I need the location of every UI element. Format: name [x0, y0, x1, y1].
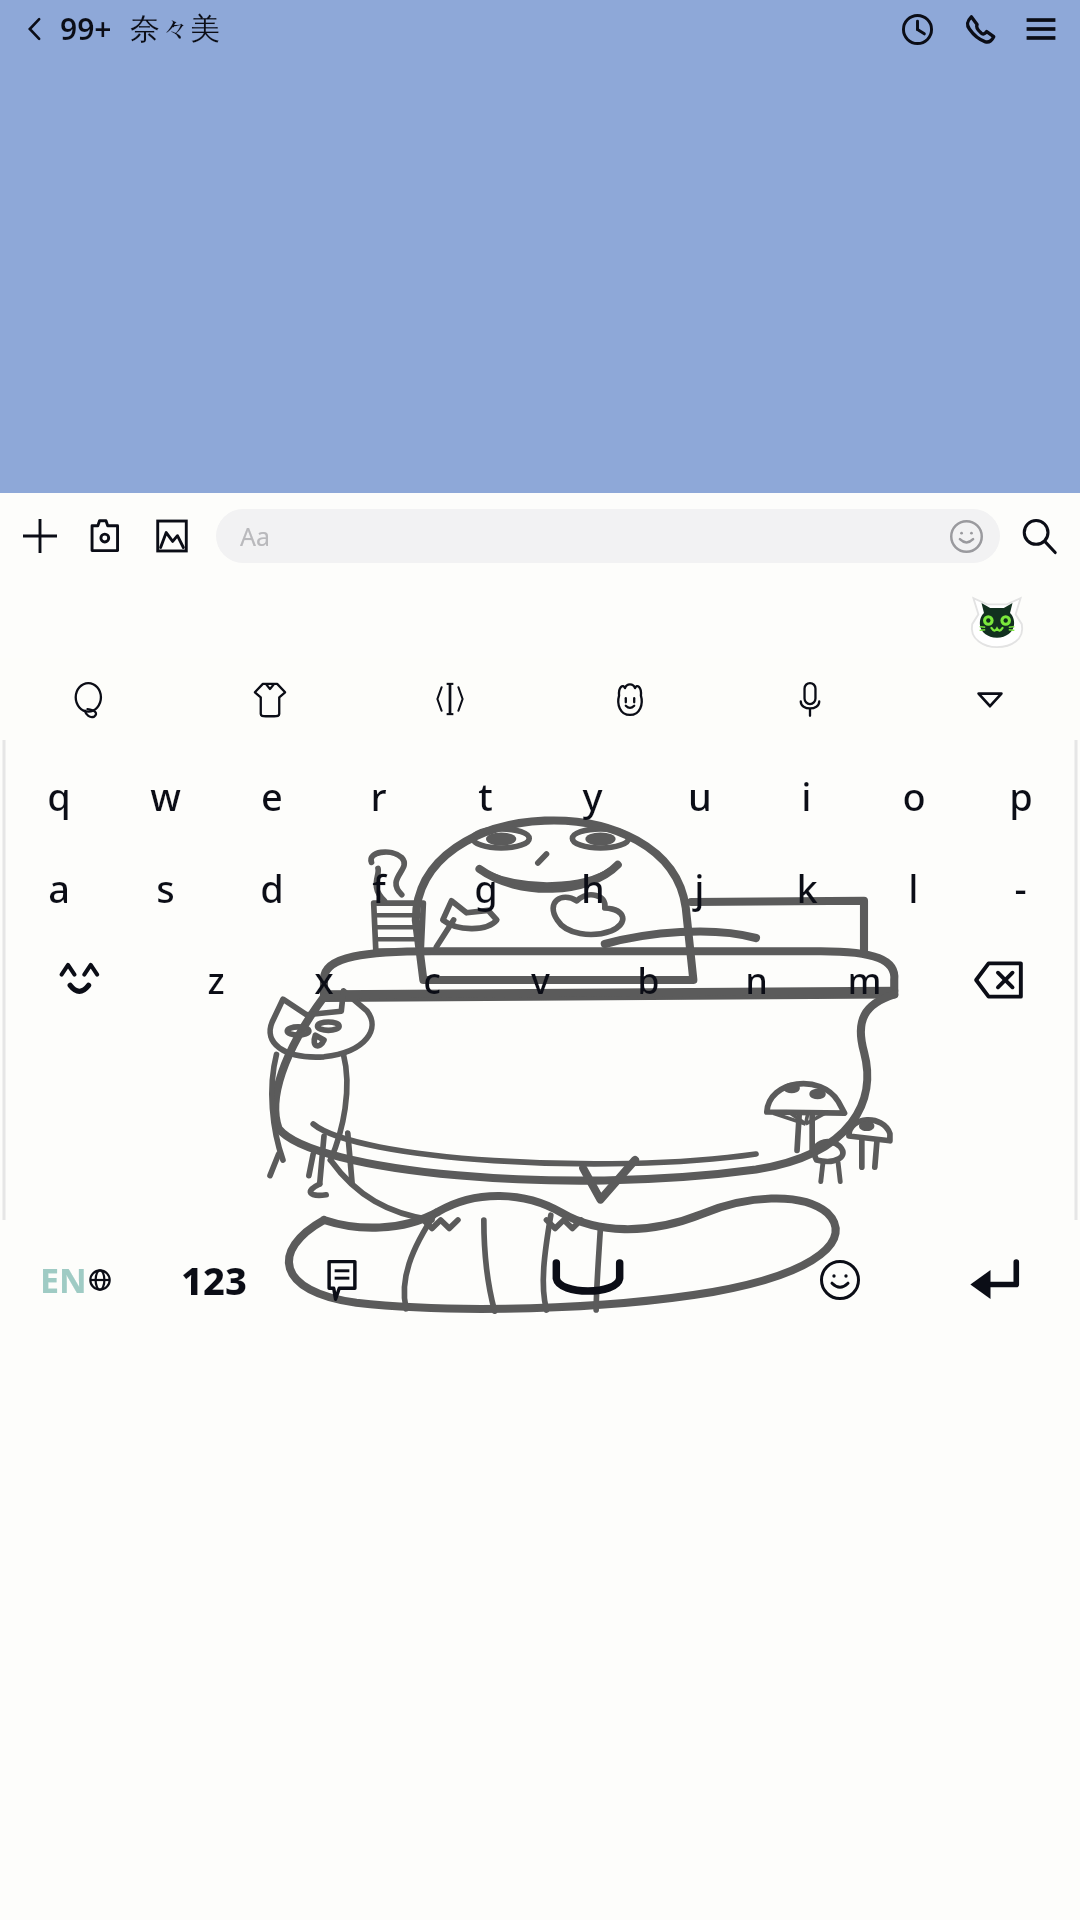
button[interactable]: j	[646, 842, 753, 934]
button[interactable]: 99+	[60, 8, 220, 49]
staticText: z	[207, 956, 225, 1005]
staticText: EN	[40, 1257, 87, 1303]
staticText: b	[637, 956, 660, 1005]
button[interactable]: Add	[14, 510, 66, 562]
staticText: v	[531, 956, 550, 1005]
button[interactable]: Search	[1012, 509, 1066, 563]
button[interactable]: k	[753, 842, 860, 934]
button[interactable]: a	[6, 842, 112, 934]
button[interactable]: w	[112, 750, 218, 842]
button[interactable]: f	[325, 842, 432, 934]
staticText: -	[1014, 862, 1027, 914]
button[interactable]: 123	[150, 1232, 278, 1328]
button[interactable]: n	[702, 934, 810, 1026]
staticText: c	[423, 956, 441, 1005]
staticText: 奈々美	[130, 10, 220, 48]
staticText: q	[47, 770, 71, 822]
button[interactable]: Gallery	[146, 510, 198, 562]
button[interactable]: Stickers	[540, 658, 720, 740]
button[interactable]: x	[270, 934, 378, 1026]
button[interactable]: Aa	[216, 509, 1000, 563]
button[interactable]: Voice	[720, 658, 900, 740]
button[interactable]: r	[325, 750, 432, 842]
staticText: m	[847, 956, 882, 1005]
staticText: j	[694, 862, 705, 914]
staticText: f	[372, 862, 386, 914]
staticText: 123	[181, 1254, 247, 1306]
staticText: Aa	[240, 519, 271, 553]
button[interactable]: Camera	[80, 510, 132, 562]
staticText: n	[745, 956, 768, 1005]
staticText: w	[150, 770, 181, 822]
button[interactable]: i	[753, 750, 860, 842]
staticText: 99+	[60, 8, 112, 49]
button[interactable]: Emoji	[770, 1232, 909, 1328]
button[interactable]: Clipboard	[360, 658, 540, 740]
button[interactable]: Emoji keyboard	[278, 1232, 406, 1328]
button[interactable]: u	[646, 750, 753, 842]
button[interactable]: Call	[954, 4, 1004, 54]
button[interactable]: Enter	[909, 1232, 1080, 1328]
button[interactable]: e	[218, 750, 325, 842]
staticText: i	[801, 770, 812, 822]
button[interactable]: t	[432, 750, 539, 842]
staticText: a	[48, 862, 70, 914]
button[interactable]: q	[6, 750, 112, 842]
button[interactable]: Timer	[892, 4, 942, 54]
button[interactable]: s	[112, 842, 218, 934]
button[interactable]: d	[218, 842, 325, 934]
button[interactable]: m	[810, 934, 918, 1026]
button[interactable]: Themes	[180, 658, 360, 740]
staticText: l	[908, 862, 919, 914]
staticText: t	[478, 770, 493, 822]
button[interactable]: z	[162, 934, 270, 1026]
staticText: r	[370, 770, 387, 822]
button[interactable]: o	[860, 750, 967, 842]
button[interactable]: Space	[406, 1232, 770, 1328]
staticText: y	[582, 770, 603, 822]
button[interactable]: c	[378, 934, 486, 1026]
button[interactable]: h	[539, 842, 646, 934]
button[interactable]: v	[486, 934, 594, 1026]
staticText: g	[474, 862, 498, 914]
staticText: k	[796, 862, 818, 914]
button[interactable]: Back	[14, 8, 56, 50]
staticText: p	[1009, 770, 1033, 822]
button[interactable]: Shift	[0, 934, 162, 1026]
button[interactable]: g	[432, 842, 539, 934]
button[interactable]: Backspace	[918, 934, 1080, 1026]
staticText: x	[314, 956, 334, 1005]
button[interactable]: -	[967, 842, 1074, 934]
button[interactable]: y	[539, 750, 646, 842]
button[interactable]: p	[967, 750, 1074, 842]
staticText: e	[261, 770, 283, 822]
staticText: s	[156, 862, 175, 914]
button[interactable]: Cat sticker	[966, 587, 1028, 649]
button[interactable]: l	[860, 842, 967, 934]
button[interactable]: Language	[0, 1232, 150, 1328]
button[interactable]: b	[594, 934, 702, 1026]
staticText: o	[902, 770, 926, 822]
button[interactable]: Chat	[0, 658, 180, 740]
button[interactable]: Menu	[1016, 4, 1066, 54]
button[interactable]: Collapse	[900, 658, 1080, 740]
staticText: u	[688, 770, 712, 822]
staticText: d	[260, 862, 284, 914]
staticText: h	[581, 862, 605, 914]
